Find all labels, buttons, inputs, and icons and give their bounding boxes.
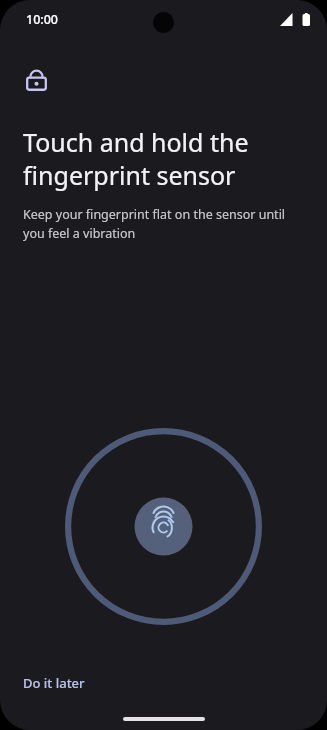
staticText: Keep your fingerprint flat on the sensor… [23, 206, 304, 242]
staticText: 10:00 [26, 11, 59, 28]
staticText: Touch and hold the fingerprint sensor [23, 125, 304, 192]
button[interactable]: Fingerprint sensor [62, 425, 265, 628]
staticText: Do it later [23, 674, 85, 692]
button[interactable]: Do it later [15, 669, 93, 697]
